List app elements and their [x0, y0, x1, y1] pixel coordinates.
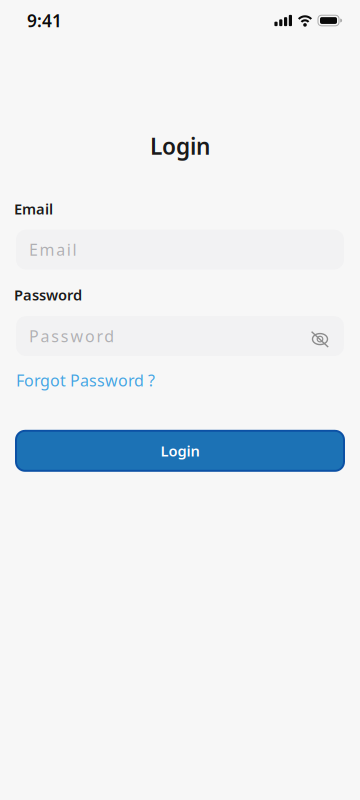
staticText: Login [160, 441, 199, 461]
staticText: Login [150, 131, 210, 161]
textField[interactable]: Email [16, 230, 344, 270]
staticText: Password [14, 285, 82, 305]
staticText: Email [14, 199, 53, 219]
secureTextField[interactable]: Password [16, 316, 344, 356]
staticText: Email [29, 239, 76, 260]
button[interactable] [308, 330, 332, 348]
button[interactable]: Forgot Password ? [16, 370, 155, 391]
staticText: 9:41 [27, 9, 62, 32]
button[interactable]: Login [16, 431, 344, 471]
staticText: Password [29, 325, 114, 347]
staticText: Forgot Password ? [16, 370, 155, 391]
